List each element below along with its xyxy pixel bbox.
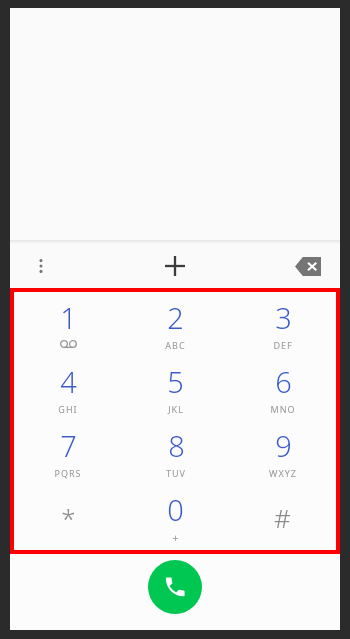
staticText: 1 — [60, 298, 77, 337]
staticText: DEF — [273, 339, 293, 351]
button[interactable]: More options — [24, 249, 58, 283]
button[interactable]: 7 — [14, 420, 122, 485]
button[interactable]: Add contact — [155, 246, 195, 286]
staticText: GHI — [58, 403, 78, 415]
staticText: 9 — [275, 426, 292, 465]
staticText: ABC — [165, 339, 186, 351]
staticText: PQRS — [54, 467, 82, 479]
staticText: 6 — [275, 362, 292, 401]
button[interactable]: Backspace — [288, 246, 328, 286]
staticText: 5 — [167, 362, 184, 401]
staticText: 7 — [60, 426, 77, 465]
button[interactable]: 8 — [122, 420, 229, 485]
button[interactable]: 3 — [229, 292, 336, 356]
button[interactable]: # — [229, 485, 336, 550]
button[interactable]: 9 — [229, 420, 336, 485]
button[interactable]: * — [14, 485, 122, 550]
staticText: MNO — [270, 403, 296, 415]
staticText: TUV — [166, 467, 186, 479]
staticText: 2 — [167, 298, 184, 337]
staticText: WXYZ — [269, 467, 297, 479]
button[interactable]: 1 — [14, 292, 122, 356]
staticText: 3 — [275, 298, 292, 337]
staticText: # — [274, 500, 291, 535]
button[interactable]: Call — [148, 560, 202, 614]
button[interactable]: 0 — [122, 485, 229, 550]
staticText: * — [61, 500, 76, 535]
staticText: 0 — [167, 490, 184, 529]
staticText: + — [172, 530, 179, 545]
button[interactable]: 6 — [229, 356, 336, 420]
button[interactable]: 2 — [122, 292, 229, 356]
button[interactable]: 4 — [14, 356, 122, 420]
button[interactable]: 5 — [122, 356, 229, 420]
staticText: JKL — [168, 403, 184, 415]
staticText: 8 — [168, 426, 185, 465]
staticText: 4 — [60, 362, 77, 401]
